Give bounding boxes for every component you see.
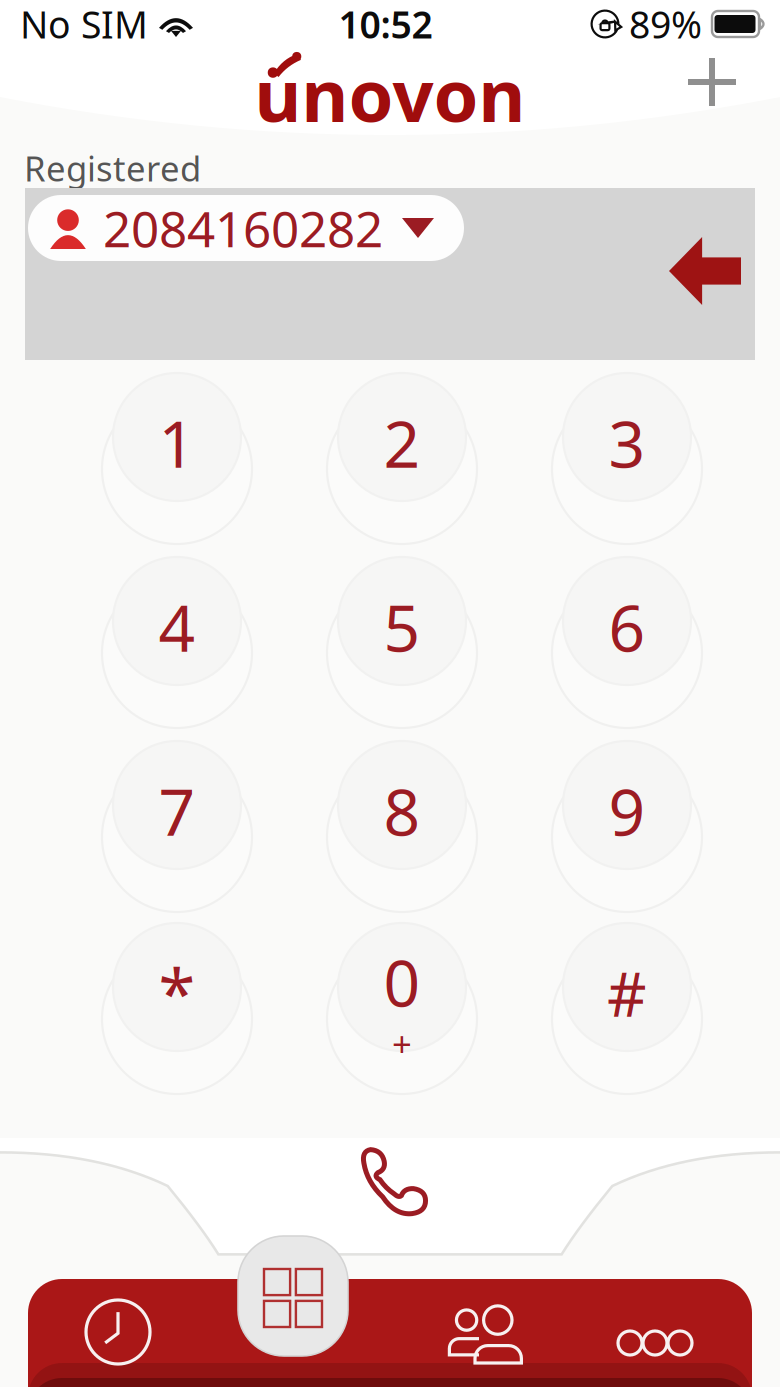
staticText: 6 [608,584,645,669]
staticText: 5 [383,584,420,669]
button[interactable]: * [84,902,270,1084]
staticText: Registered [24,145,201,191]
staticText: 9 [608,768,645,853]
button[interactable]: # [534,902,720,1084]
button[interactable]: 6 [534,536,720,718]
staticText: 10:52 [338,0,432,49]
button[interactable]: Keypad [223,1221,363,1371]
button[interactable]: Call [317,1107,467,1257]
button[interactable]: 9 [534,720,720,902]
staticText: 1 [158,400,195,485]
staticText: 0 [383,939,420,1024]
button[interactable]: 0 [309,902,495,1084]
button[interactable]: More [580,1289,730,1387]
button[interactable]: Add contact [672,42,752,122]
button[interactable]: 2 [309,352,495,534]
staticText: 89% [629,0,702,49]
staticText: 4 [158,584,195,669]
staticText: 2 [383,400,420,485]
button[interactable]: 5 [309,536,495,718]
staticText: * [158,949,195,1037]
staticText: + [392,1020,412,1066]
staticText: 2084160282 [103,195,383,261]
staticText: unovon [254,46,525,142]
staticText: No SIM [20,0,148,49]
button[interactable]: Backspace [650,221,760,321]
button[interactable]: 1 [84,352,270,534]
button[interactable]: 2084160282 [28,195,464,261]
button[interactable]: Recents [28,1278,208,1386]
staticText: 8 [383,768,420,853]
button[interactable]: 4 [84,536,270,718]
button[interactable]: 8 [309,720,495,902]
staticText: 7 [158,768,195,853]
button[interactable]: Contacts [397,1280,577,1387]
button[interactable]: 7 [84,720,270,902]
staticText: 3 [608,400,645,485]
staticText: # [607,952,647,1034]
button[interactable]: 3 [534,352,720,534]
